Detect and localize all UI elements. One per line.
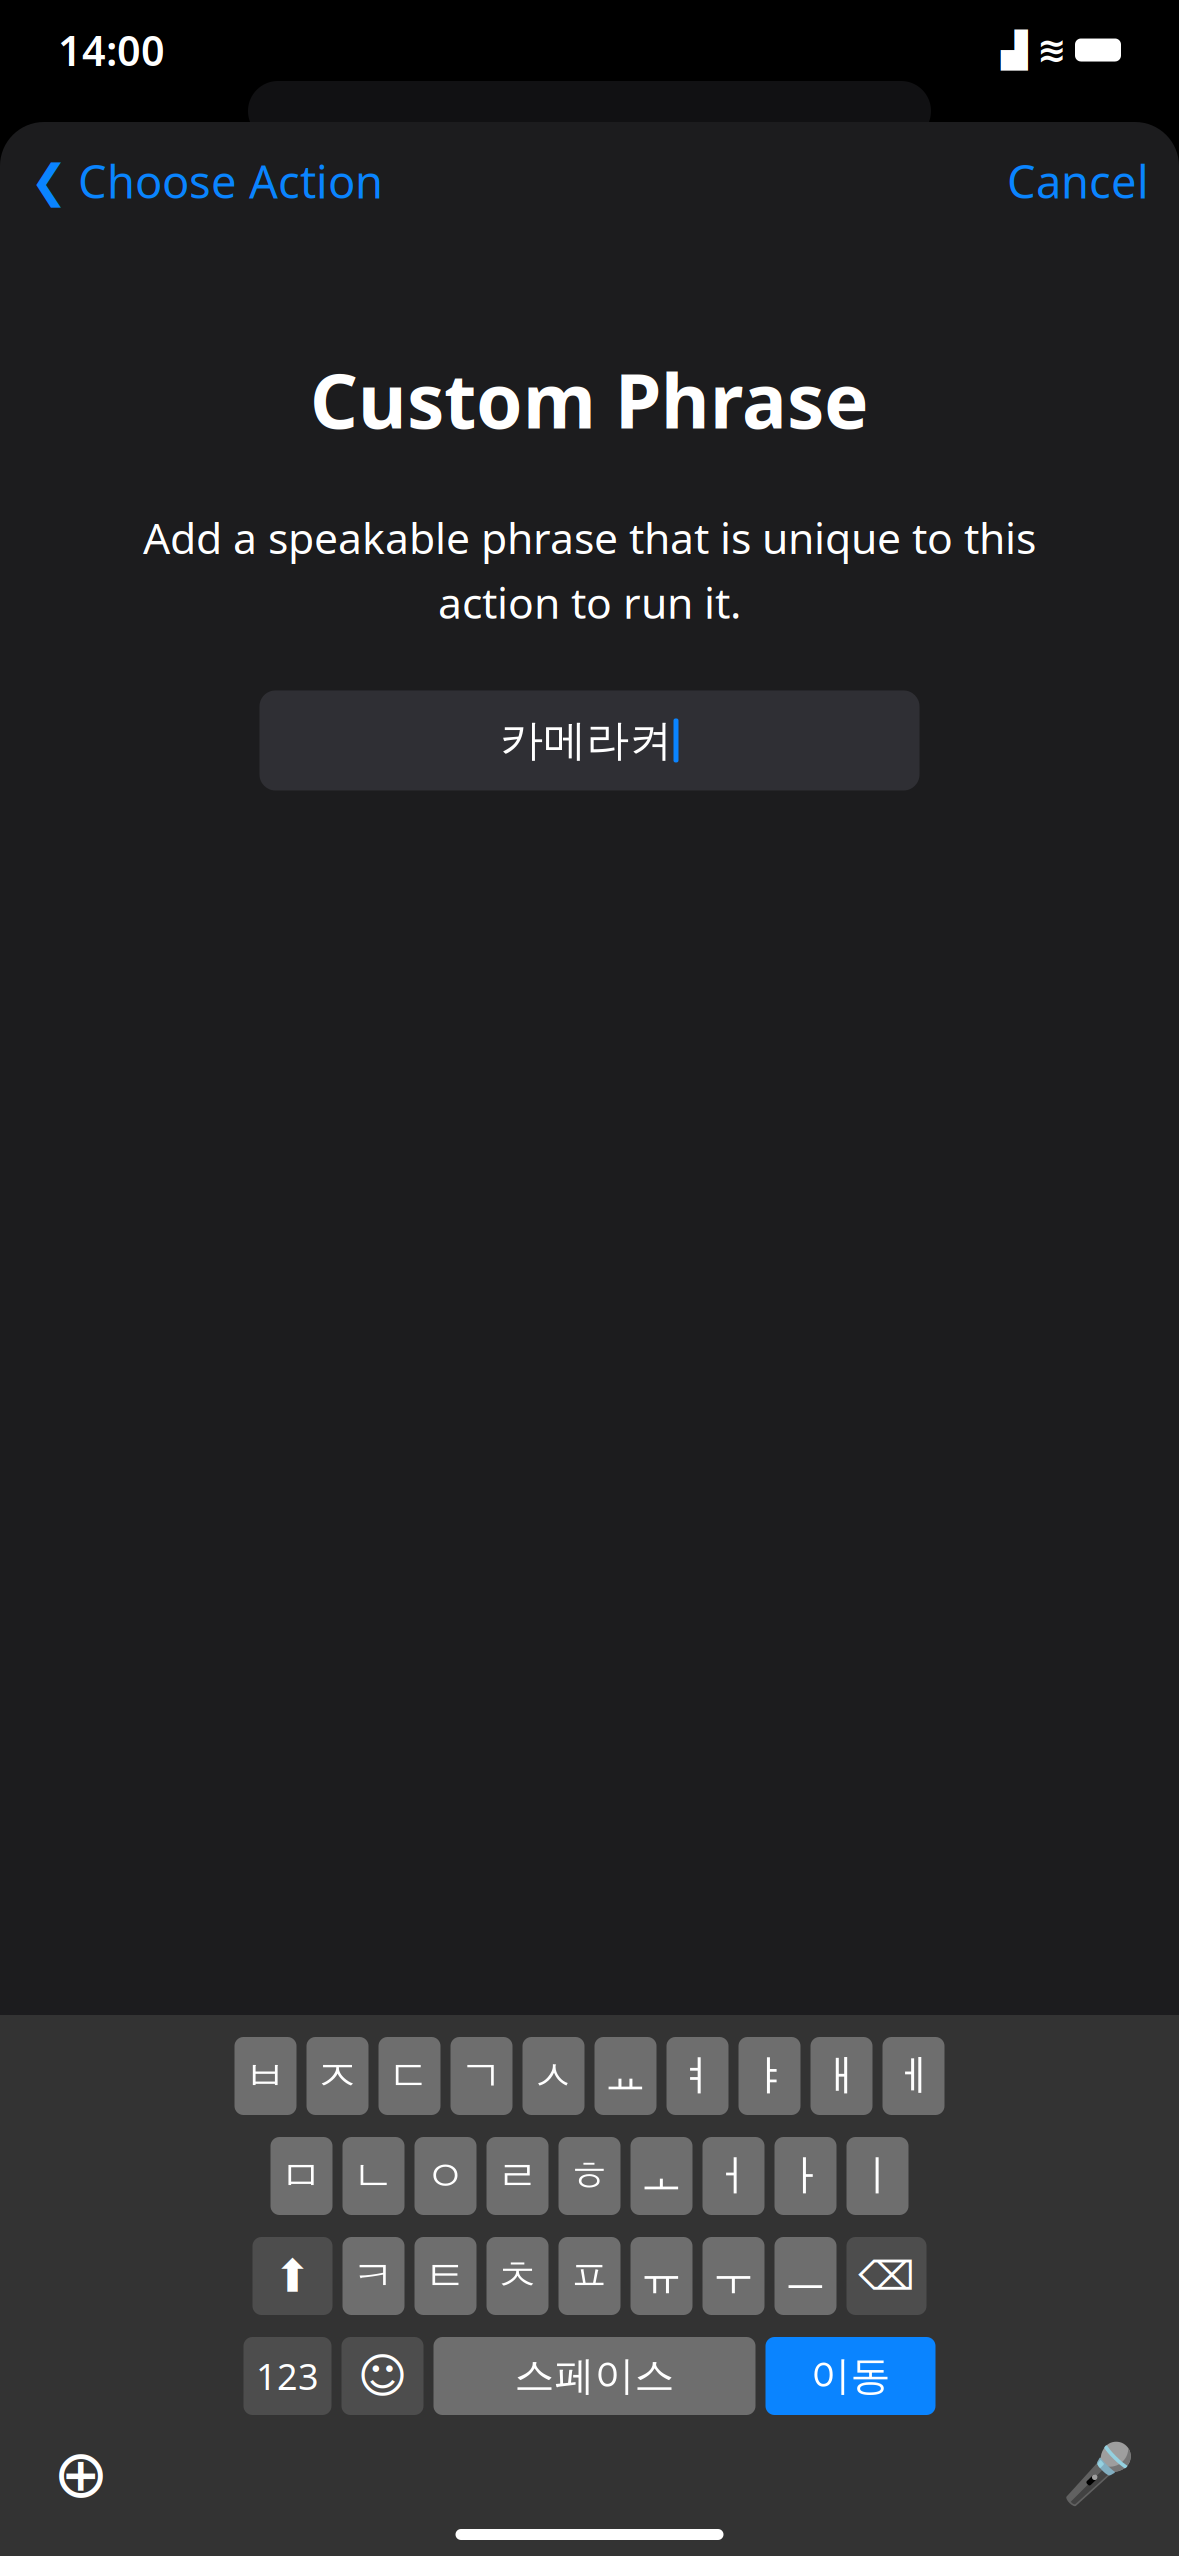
- staticText: 이동: [810, 2351, 890, 2400]
- staticText: ⊕: [53, 2436, 109, 2512]
- button[interactable]: 스페이스: [433, 2337, 755, 2415]
- button[interactable]: ㅂ: [234, 2037, 296, 2115]
- button[interactable]: ㅓ: [702, 2137, 764, 2215]
- button[interactable]: ㅛ: [594, 2037, 656, 2115]
- button[interactable]: Cancel: [1007, 151, 1149, 211]
- staticText: ⬆: [273, 2250, 311, 2302]
- button[interactable]: ㅅ: [522, 2037, 584, 2115]
- button[interactable]: ㅐ: [810, 2037, 872, 2115]
- button[interactable]: ㄷ: [378, 2037, 440, 2115]
- staticText: ㄹ: [496, 2150, 539, 2202]
- button[interactable]: ㅇ: [414, 2137, 476, 2215]
- button[interactable]: ㅗ: [630, 2137, 692, 2215]
- button[interactable]: ㅕ: [666, 2037, 728, 2115]
- button[interactable]: ㅑ: [738, 2037, 800, 2115]
- button[interactable]: ㅜ: [702, 2237, 764, 2315]
- staticText: ㅈ: [316, 2050, 359, 2102]
- staticText: ㄴ: [352, 2150, 395, 2202]
- button[interactable]: 이동: [765, 2337, 935, 2415]
- staticText: ㅁ: [280, 2150, 323, 2202]
- staticText: ㅠ: [640, 2250, 683, 2302]
- staticText: ㅛ: [604, 2050, 647, 2102]
- staticText: ▟: [1001, 30, 1028, 70]
- staticText: ㅡ: [784, 2250, 827, 2302]
- button[interactable]: ㅔ: [882, 2037, 944, 2115]
- staticText: Choose Action: [78, 151, 383, 211]
- staticText: ㄱ: [460, 2050, 503, 2102]
- staticText: 123: [256, 2352, 319, 2400]
- staticText: ㅊ: [496, 2250, 539, 2302]
- button[interactable]: 카메라켜: [259, 690, 919, 790]
- staticText: Add a speakable phrase that is unique to…: [143, 509, 1036, 566]
- button[interactable]: ㅏ: [774, 2137, 836, 2215]
- button[interactable]: ㅣ: [846, 2137, 908, 2215]
- button[interactable]: ㅌ: [414, 2237, 476, 2315]
- staticText: ≋: [1037, 30, 1066, 70]
- staticText: ⌫: [858, 2253, 915, 2299]
- staticText: ㅑ: [748, 2050, 791, 2102]
- button[interactable]: ㄹ: [486, 2137, 548, 2215]
- button[interactable]: Dictation: [1053, 2429, 1143, 2519]
- staticText: 🎤: [1061, 2440, 1134, 2507]
- staticText: Custom Phrase: [310, 350, 869, 449]
- button[interactable]: ㅈ: [306, 2037, 368, 2115]
- button[interactable]: Next keyboard: [36, 2429, 126, 2519]
- staticText: ㅍ: [568, 2250, 611, 2302]
- staticText: Cancel: [1007, 151, 1149, 211]
- button[interactable]: Delete: [846, 2237, 926, 2315]
- button[interactable]: ㅠ: [630, 2237, 692, 2315]
- button[interactable]: ㅁ: [270, 2137, 332, 2215]
- staticText: ㅋ: [352, 2250, 395, 2302]
- staticText: ㅓ: [712, 2150, 755, 2202]
- staticText: ㅗ: [640, 2150, 683, 2202]
- staticText: 스페이스: [514, 2351, 674, 2400]
- button[interactable]: 123: [243, 2337, 331, 2415]
- staticText: ㅐ: [820, 2050, 863, 2102]
- staticText: ❮: [30, 155, 68, 207]
- button[interactable]: Emoji: [341, 2337, 423, 2415]
- staticText: ㅜ: [712, 2250, 755, 2302]
- button[interactable]: ㅋ: [342, 2237, 404, 2315]
- staticText: ㅣ: [856, 2150, 899, 2202]
- button[interactable]: ㅊ: [486, 2237, 548, 2315]
- staticText: ㅕ: [676, 2050, 719, 2102]
- button[interactable]: ㅎ: [558, 2137, 620, 2215]
- button[interactable]: Shift: [252, 2237, 332, 2315]
- button[interactable]: ㅍ: [558, 2237, 620, 2315]
- staticText: ㅌ: [424, 2250, 467, 2302]
- staticText: ㅅ: [532, 2050, 575, 2102]
- staticText: 14:00: [58, 23, 165, 77]
- staticText: ㅔ: [892, 2050, 935, 2102]
- button[interactable]: ㄴ: [342, 2137, 404, 2215]
- staticText: ㄷ: [388, 2050, 431, 2102]
- staticText: ☺: [357, 2349, 407, 2403]
- staticText: ㅏ: [784, 2150, 827, 2202]
- button[interactable]: ㄱ: [450, 2037, 512, 2115]
- staticText: action to run it.: [438, 574, 741, 630]
- staticText: ㅎ: [568, 2150, 611, 2202]
- button[interactable]: ❮: [30, 151, 383, 211]
- button[interactable]: ㅡ: [774, 2237, 836, 2315]
- staticText: ㅂ: [244, 2050, 287, 2102]
- staticText: ㅇ: [424, 2150, 467, 2202]
- staticText: 카메라켜: [500, 714, 672, 767]
